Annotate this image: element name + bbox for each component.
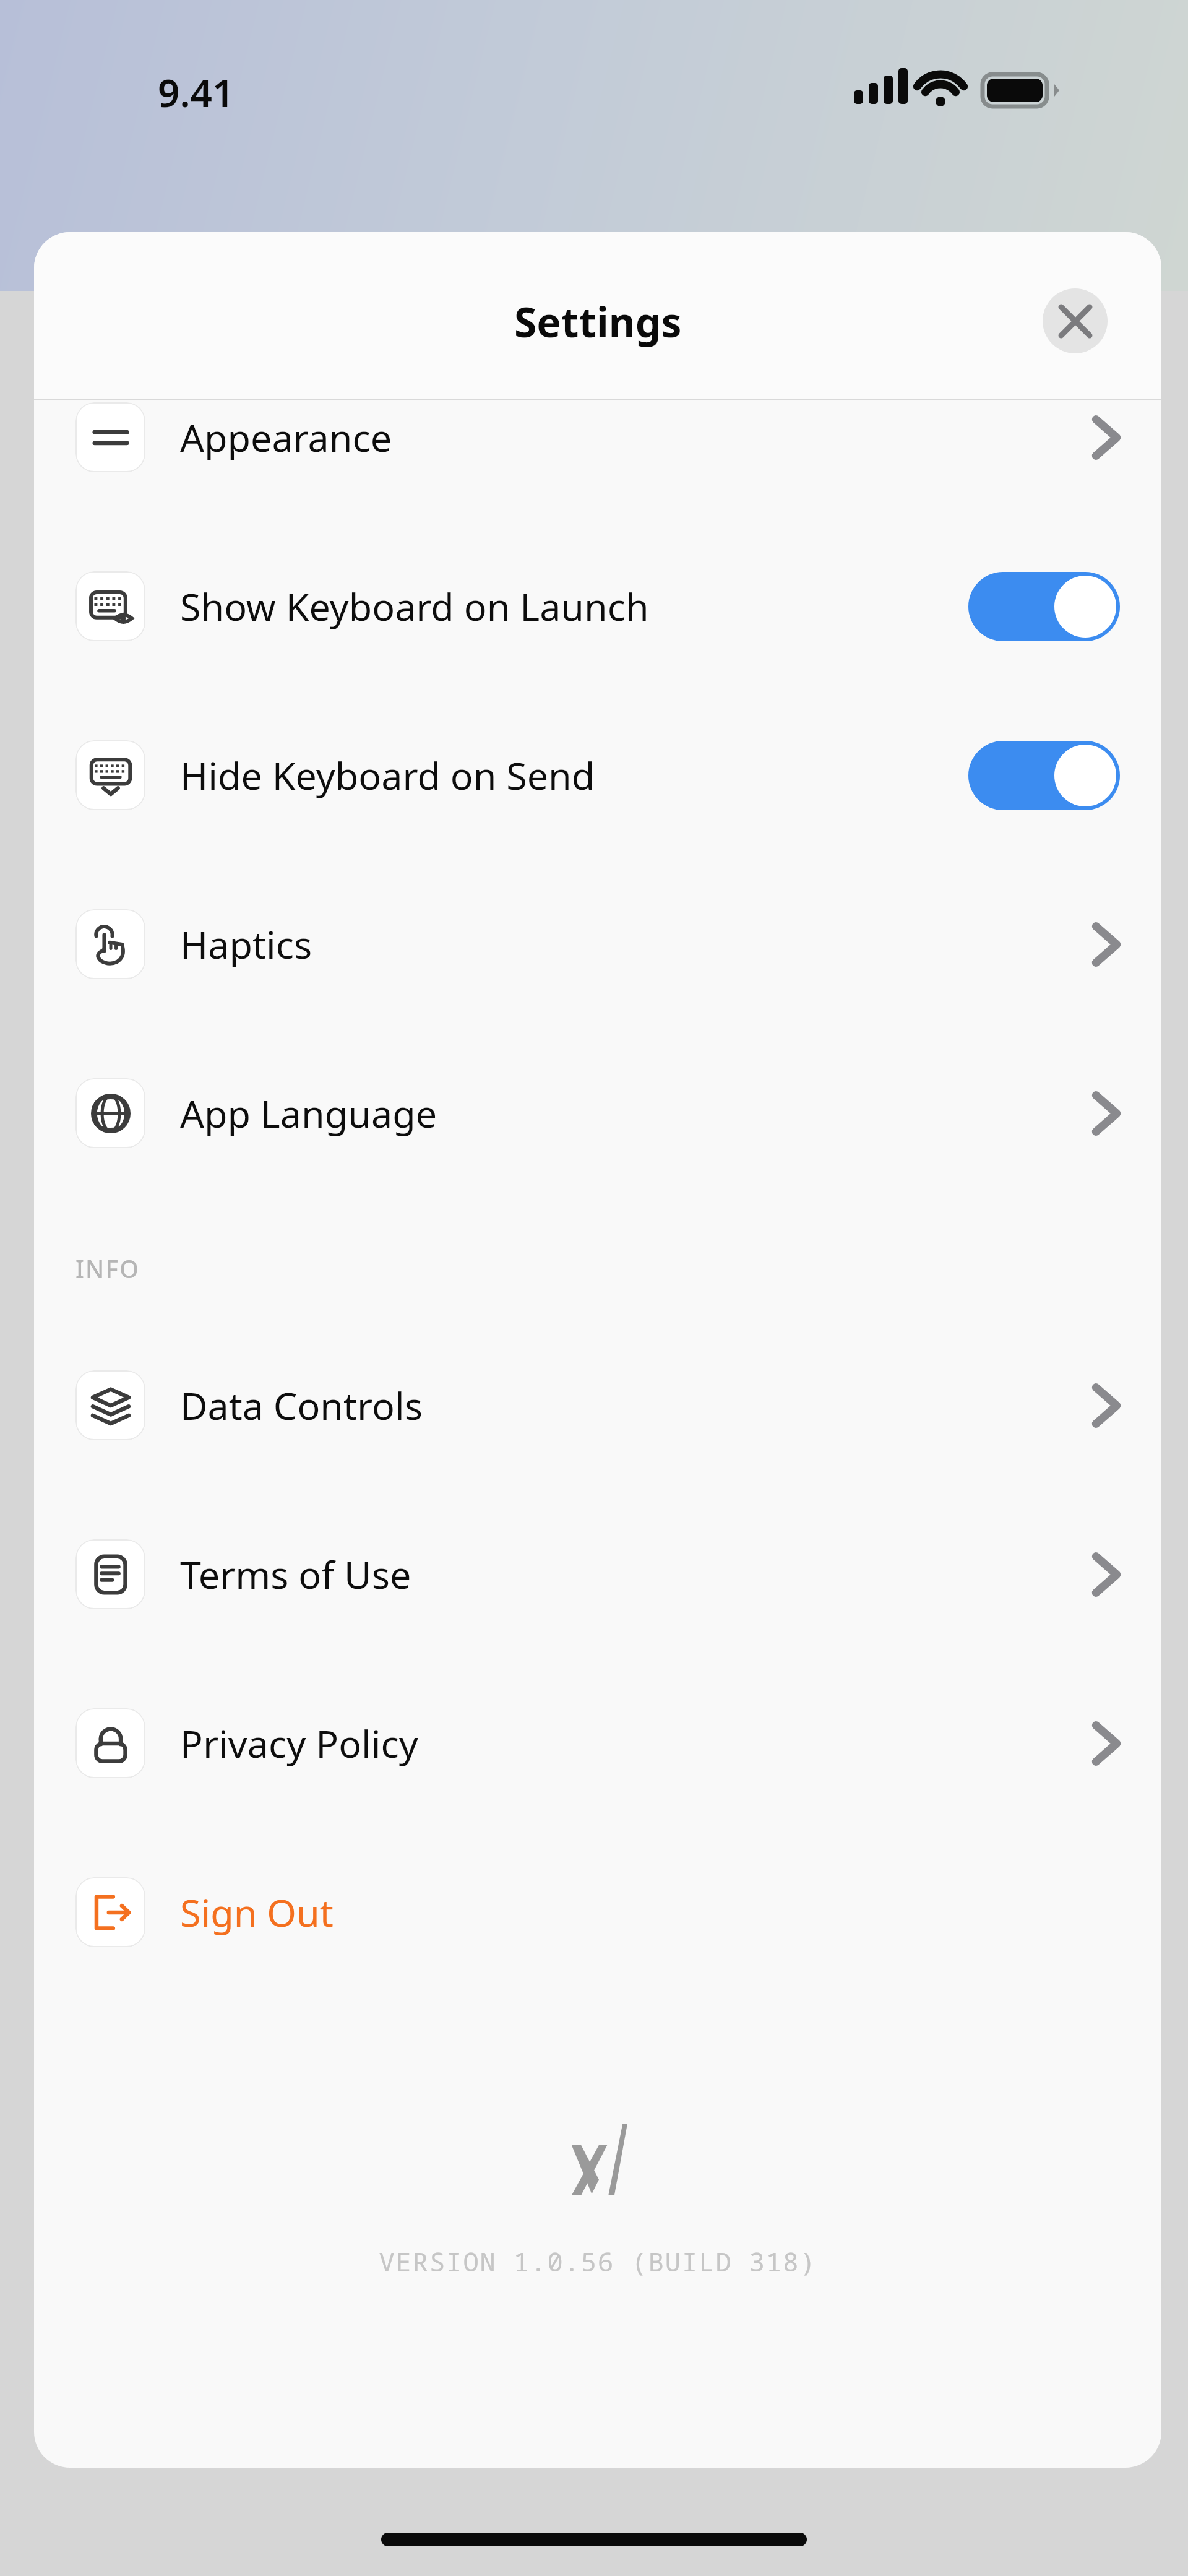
button[interactable]: Terms of Use xyxy=(34,1490,1161,1659)
staticText: Sign Out xyxy=(180,1887,334,1938)
staticText: Show Keyboard on Launch xyxy=(180,581,649,632)
staticText: Settings xyxy=(514,293,682,349)
staticText: Haptics xyxy=(180,918,312,970)
staticText: App Language xyxy=(180,1087,437,1139)
staticText: VERSION 1.0.56 (BUILD 318) xyxy=(379,2244,817,2279)
staticText: Privacy Policy xyxy=(180,1718,418,1769)
staticText: INFO xyxy=(75,1252,140,1285)
button[interactable]: Close xyxy=(1043,288,1108,353)
button[interactable]: Show Keyboard on Launch xyxy=(968,572,1120,641)
button[interactable]: Sign Out xyxy=(34,1828,1161,1997)
staticText: Data Controls xyxy=(180,1380,423,1431)
button[interactable]: Privacy Policy xyxy=(34,1659,1161,1828)
staticText: 9.41 xyxy=(158,66,235,118)
staticText: Appearance xyxy=(180,412,392,463)
button[interactable]: Hide Keyboard on Send xyxy=(34,691,1161,860)
button[interactable]: Hide Keyboard on Send xyxy=(968,741,1120,810)
button[interactable]: Show Keyboard on Launch xyxy=(34,522,1161,691)
button[interactable]: App Language xyxy=(34,1029,1161,1198)
staticText: Hide Keyboard on Send xyxy=(180,750,595,801)
button[interactable]: Appearance xyxy=(34,353,1161,522)
button[interactable]: Data Controls xyxy=(34,1321,1161,1490)
button[interactable]: Haptics xyxy=(34,860,1161,1029)
staticText: Terms of Use xyxy=(180,1549,411,1600)
